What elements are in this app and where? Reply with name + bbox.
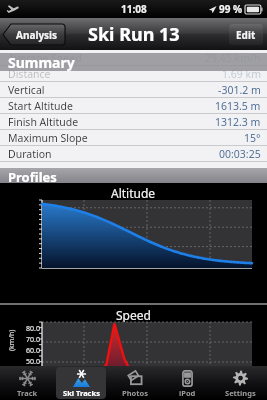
staticText: 15° <box>244 131 261 145</box>
staticText: 50.0 <box>18 357 40 367</box>
staticText: Profiles <box>8 168 57 183</box>
staticText: Speed <box>116 307 151 323</box>
staticText: Duration <box>8 147 52 161</box>
button[interactable]: Ski Tracks <box>56 367 106 399</box>
staticText: Edit <box>236 28 256 42</box>
button[interactable]: Track <box>2 367 52 399</box>
button[interactable]: Maximum Slope <box>0 130 267 146</box>
staticText: 60.0 <box>18 346 40 356</box>
staticText: Average Speed <box>8 51 82 65</box>
button[interactable]: iPod <box>163 367 212 399</box>
button[interactable]: Settings <box>216 367 265 399</box>
staticText: Ski Run 13 <box>88 22 180 47</box>
button[interactable]: Edit <box>229 24 263 45</box>
staticText: Analysis <box>16 28 58 42</box>
button[interactable]: Distance <box>0 66 267 82</box>
staticText: iPod <box>179 388 196 398</box>
staticText: Summary <box>8 53 75 71</box>
staticText: Altitude <box>111 185 156 201</box>
staticText: Photos <box>122 388 148 398</box>
button[interactable]: Photos <box>110 367 159 399</box>
button[interactable]: Start Altitude <box>0 98 267 114</box>
staticText: Finish Altitude <box>8 115 79 129</box>
staticText: 11:08 <box>121 2 147 16</box>
staticText: Settings <box>225 388 256 398</box>
staticText: (km/h) <box>7 329 17 351</box>
staticText: -301.2 m <box>218 83 261 97</box>
staticText: 80.0 <box>18 324 40 334</box>
staticText: 99 % <box>219 2 243 16</box>
staticText: 1.69 km <box>222 67 261 81</box>
staticText: 00:03:25 <box>219 147 261 161</box>
staticText: 29.45 km/h <box>205 51 261 65</box>
staticText: Maximum Slope <box>8 131 88 145</box>
staticText: Ski Tracks <box>63 388 100 398</box>
button[interactable]: Analysis <box>3 24 65 45</box>
button[interactable]: Average Speed <box>0 50 267 66</box>
staticText: 70.0 <box>18 335 40 345</box>
staticText: 1312.3 m <box>215 115 261 129</box>
staticText: Distance <box>8 67 51 81</box>
staticText: Vertical <box>8 83 45 97</box>
staticText: Start Altitude <box>8 99 73 113</box>
staticText: Track <box>17 388 38 398</box>
button[interactable]: Finish Altitude <box>0 114 267 130</box>
staticText: 1613.5 m <box>215 99 261 113</box>
button[interactable]: Vertical <box>0 82 267 98</box>
button[interactable]: Duration <box>0 146 267 162</box>
